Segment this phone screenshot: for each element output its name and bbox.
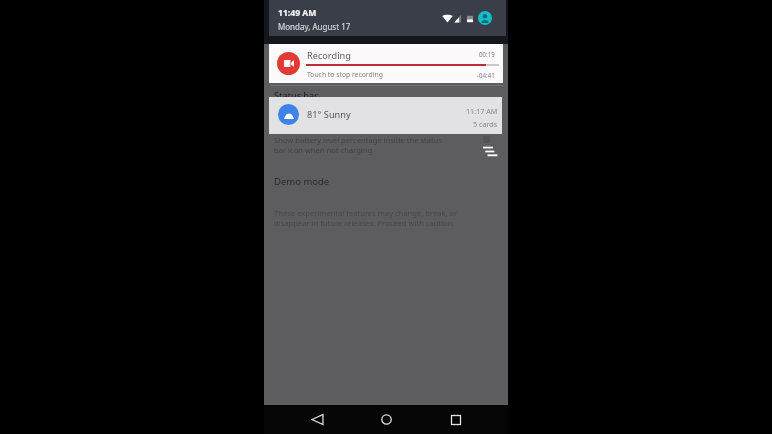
button[interactable]: Back [300, 405, 334, 434]
button[interactable]: Home [369, 405, 403, 434]
staticText: Demo mode [274, 175, 330, 188]
button[interactable]: 81° Sunny [269, 97, 502, 134]
staticText: 11:17 AM [466, 106, 498, 116]
button[interactable]: Recents [439, 405, 473, 434]
other: Sort [483, 146, 498, 157]
staticText: 00:19 [479, 50, 495, 58]
staticText: Touch to stop recording [307, 70, 383, 79]
button[interactable]: Profile [478, 11, 492, 25]
button[interactable]: Recording [269, 44, 503, 83]
staticText: 5 cards [473, 119, 498, 129]
staticText: Status bar [274, 89, 318, 101]
staticText: 11:49 AM [278, 7, 317, 19]
staticText: Show battery level percentage inside the… [274, 135, 443, 155]
staticText: Monday, August 17 [278, 21, 351, 32]
staticText: 81° Sunny [307, 108, 351, 121]
staticText: These experimental features may change, … [274, 208, 458, 228]
staticText: -04:41 [477, 71, 495, 79]
staticText: Recording [307, 49, 351, 62]
